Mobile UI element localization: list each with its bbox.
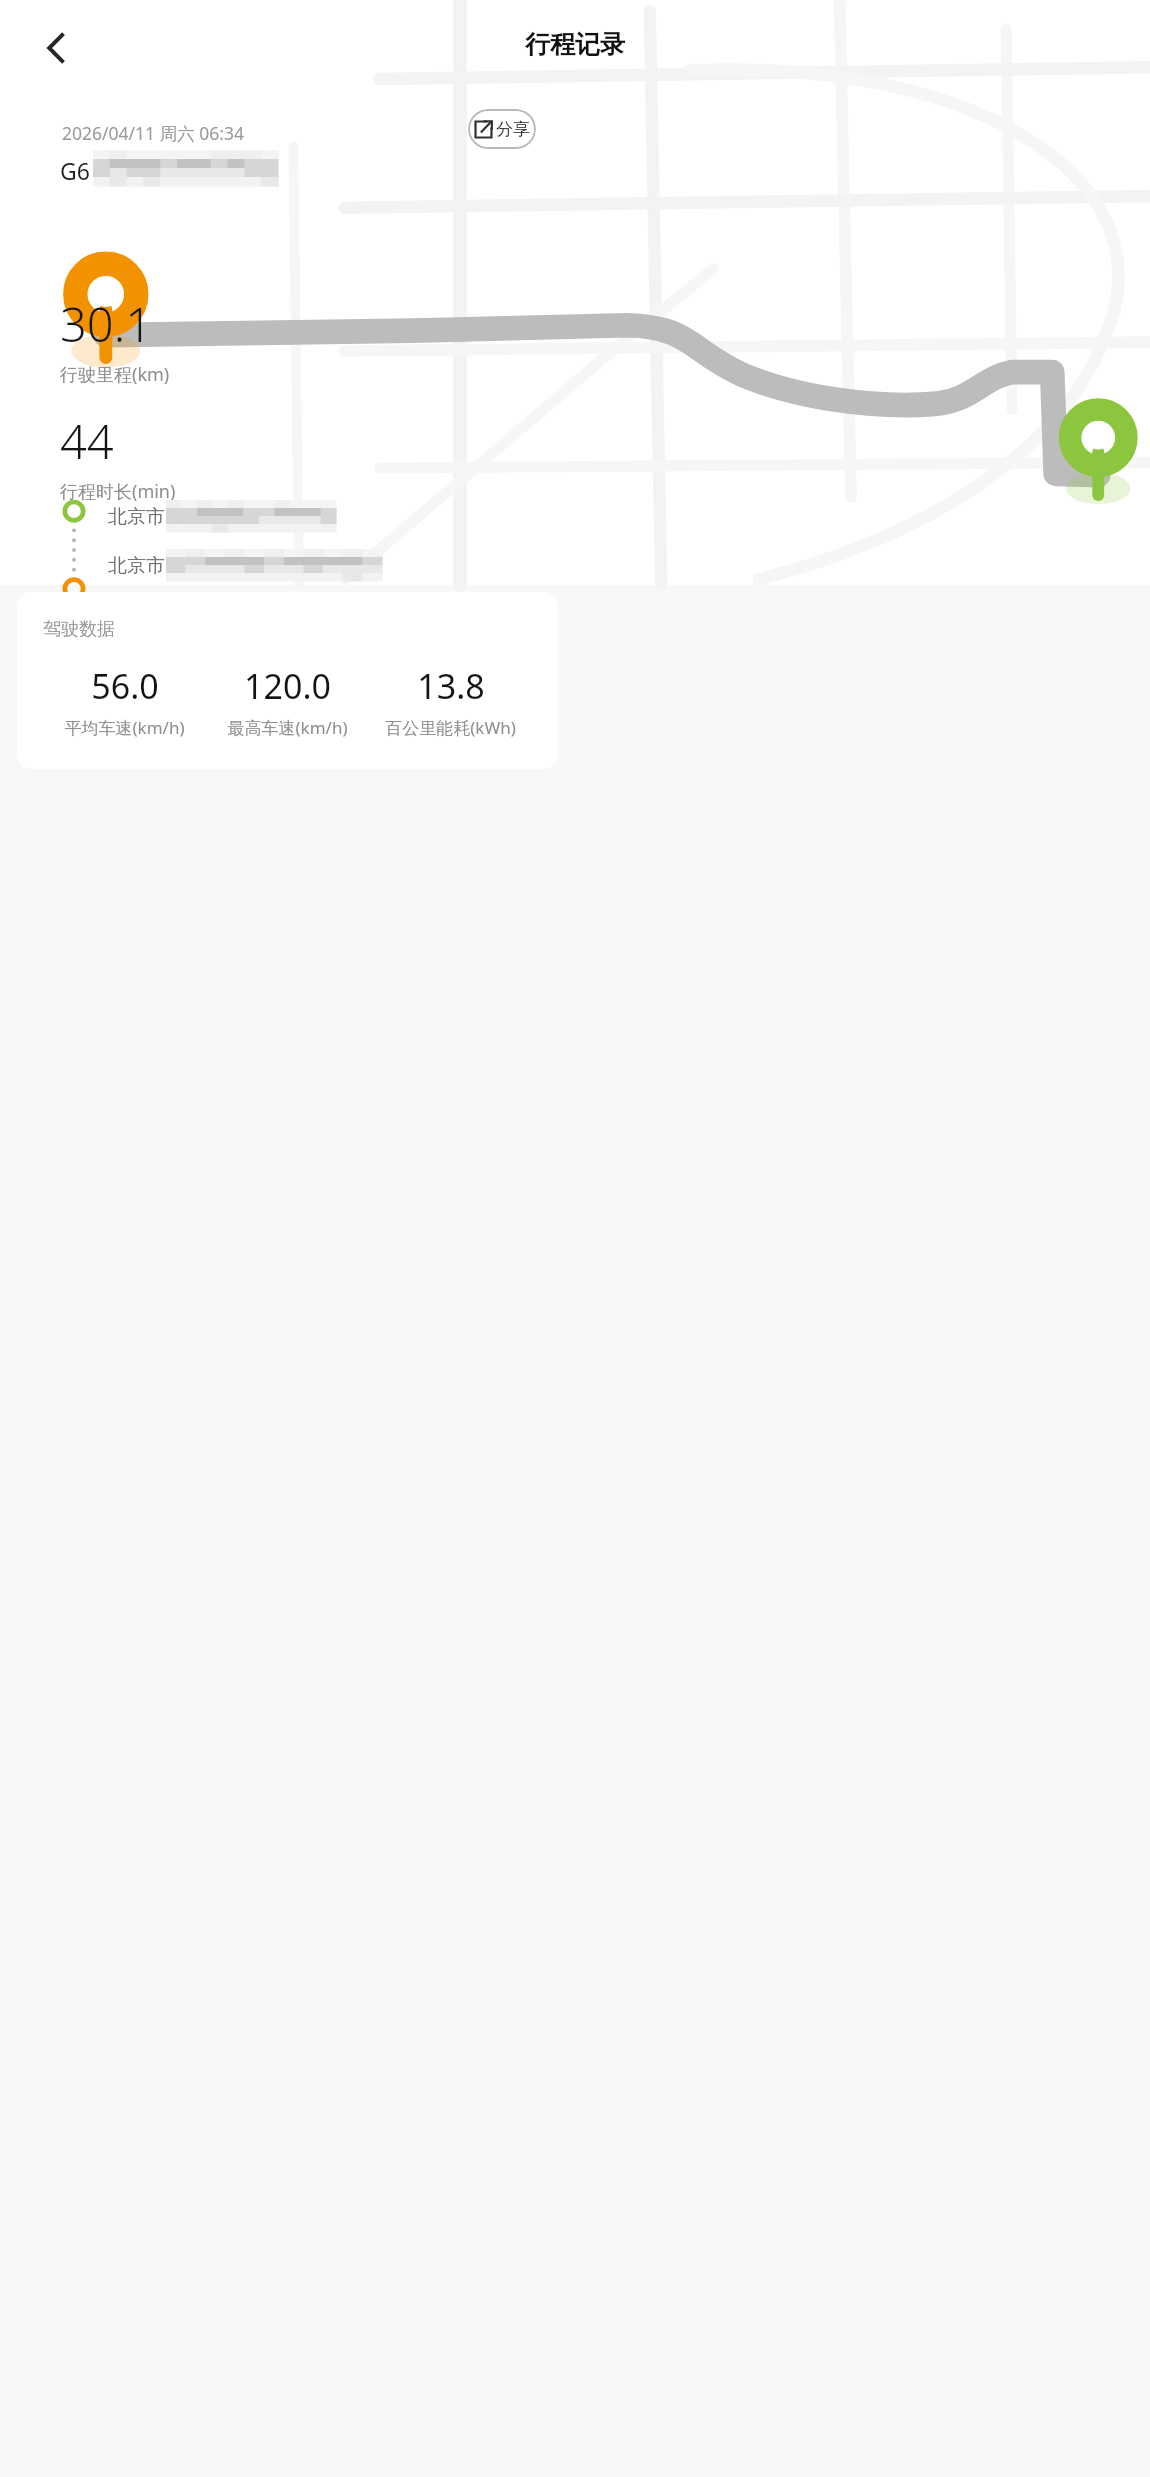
staticText: 百公里能耗(kWh) [385,716,516,739]
staticText: G6 [60,155,90,186]
staticText: 30.1 [60,292,152,356]
staticText: 分享 [496,119,530,140]
staticText: 56.0 [91,663,159,709]
staticText: 平均车速(km/h) [64,716,185,739]
staticText: 行程记录 [525,29,625,60]
staticText: 44 [60,409,114,473]
staticText: 北京市 [108,554,165,578]
staticText: 13.8 [417,663,485,709]
button[interactable]: 驾驶数据 [17,592,558,769]
button[interactable]: 分享 [468,109,536,149]
staticText: 行程时长(min) [60,479,176,504]
staticText: 120.0 [244,663,331,709]
staticText: 行驶里程(km) [60,362,170,387]
staticText: 2026/04/11 周六 06:34 [62,121,244,145]
staticText: 北京市 [108,505,165,529]
staticText: 驾驶数据 [43,618,115,641]
button[interactable]: Back [20,12,92,84]
staticText: 最高车速(km/h) [227,716,348,739]
